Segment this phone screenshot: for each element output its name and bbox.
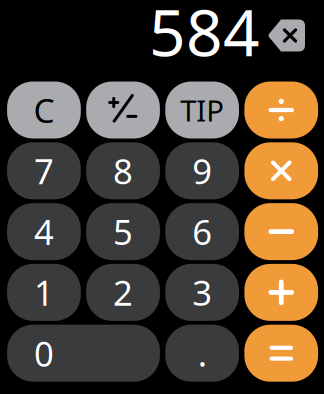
staticText: 8	[113, 148, 133, 194]
staticText: 6	[192, 209, 212, 255]
button[interactable]: Delete	[268, 20, 305, 52]
button[interactable]: Equals	[244, 325, 318, 382]
button[interactable]: 9	[165, 142, 239, 199]
button[interactable]: TIP	[165, 81, 239, 138]
button[interactable]: 5	[86, 203, 160, 260]
button[interactable]: Plus minus	[86, 81, 160, 138]
staticText: 4	[34, 209, 54, 255]
button[interactable]: Plus	[244, 264, 318, 321]
staticText: 5	[113, 209, 133, 255]
button[interactable]: 6	[165, 203, 239, 260]
staticText: .	[198, 330, 207, 376]
button[interactable]: 1	[7, 264, 81, 321]
button[interactable]: 2	[86, 264, 160, 321]
staticText: C	[33, 88, 54, 132]
staticText: 7	[34, 148, 54, 194]
button[interactable]: .	[165, 325, 239, 382]
button[interactable]: 4	[7, 203, 81, 260]
button[interactable]: 8	[86, 142, 160, 199]
button[interactable]: 3	[165, 264, 239, 321]
staticText: 1	[34, 269, 54, 315]
button[interactable]: Multiply	[244, 142, 318, 199]
button[interactable]: Divide	[244, 81, 318, 138]
staticText: TIP	[180, 90, 224, 129]
staticText: 2	[113, 269, 133, 315]
button[interactable]: Minus	[244, 203, 318, 260]
button[interactable]: 7	[7, 142, 81, 199]
button[interactable]: 0	[7, 325, 160, 382]
button[interactable]: C	[7, 81, 81, 138]
staticText: 9	[192, 148, 212, 194]
staticText: 3	[192, 269, 212, 315]
staticText: 0	[34, 330, 54, 376]
staticText: 584	[149, 0, 260, 74]
